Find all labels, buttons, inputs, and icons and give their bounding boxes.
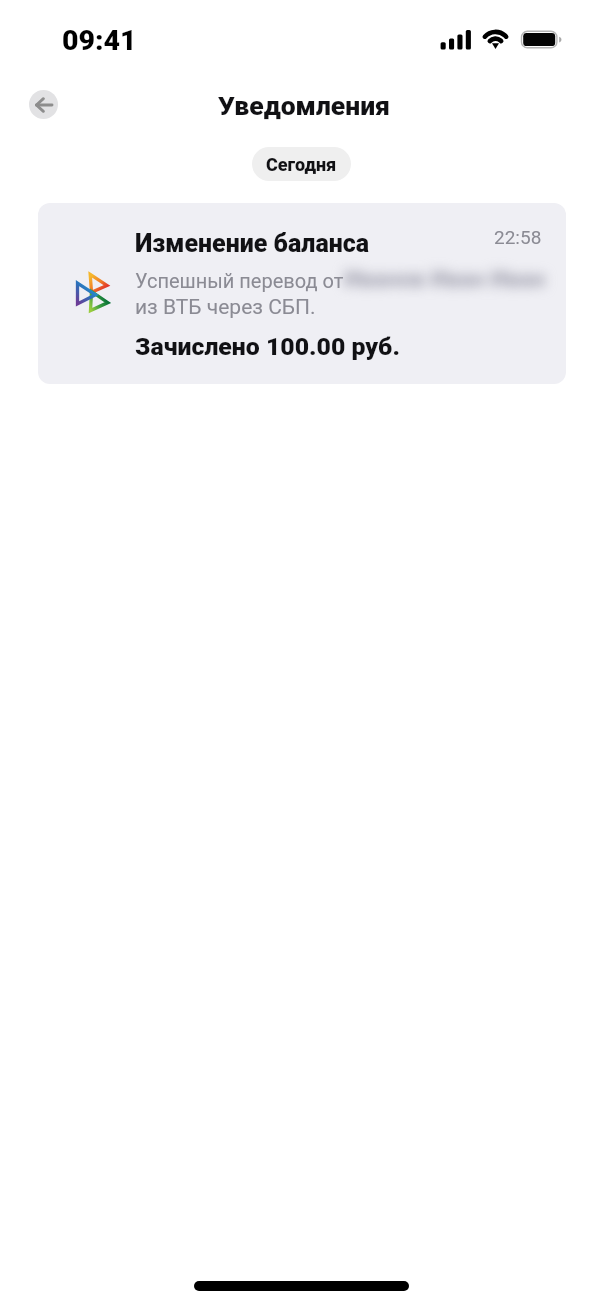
staticText: Уведомления <box>218 90 390 121</box>
staticText: 22:58 <box>494 226 542 248</box>
button[interactable]: Изменение баланса <box>38 203 566 384</box>
staticText: Иванов Иван Иванович <box>344 266 544 293</box>
staticText: Изменение баланса <box>135 229 369 258</box>
staticText: 09:41 <box>62 24 137 57</box>
staticText: Зачислено 100.00 руб. <box>135 332 400 361</box>
staticText: Успешный перевод от <box>135 269 344 292</box>
button[interactable]: Сегодня <box>252 147 351 181</box>
staticText: из ВТБ через СБП. <box>135 295 316 320</box>
staticText: Сегодня <box>266 154 337 175</box>
button[interactable]: Back <box>29 90 58 119</box>
